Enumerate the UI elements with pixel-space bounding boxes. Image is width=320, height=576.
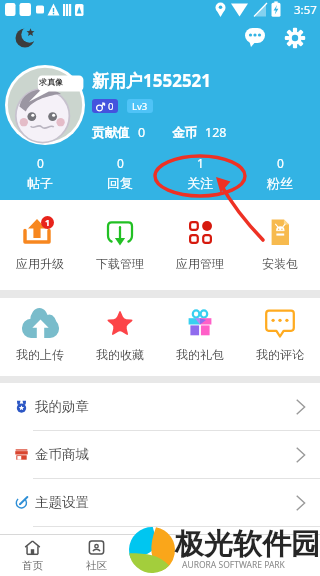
staticText: 求真像 bbox=[39, 77, 63, 87]
staticText: 关注 bbox=[187, 175, 213, 191]
staticText: 我的上传 bbox=[16, 347, 64, 362]
staticText: 0 bbox=[138, 124, 146, 141]
staticText: 首页 bbox=[22, 559, 43, 572]
staticText: 我的 bbox=[278, 559, 299, 572]
button[interactable]: 主题设置 bbox=[0, 479, 320, 526]
staticText: 金币 bbox=[172, 125, 197, 141]
button[interactable]: 我的评论 bbox=[240, 308, 320, 362]
button[interactable]: 0 bbox=[0, 155, 80, 191]
staticText: 回复 bbox=[107, 175, 133, 191]
staticText: AURORA SOFTWARE PARK bbox=[182, 559, 285, 571]
button[interactable]: 排行 bbox=[192, 535, 256, 576]
button[interactable]: Night mode bbox=[8, 20, 44, 56]
button[interactable]: 我的勋章 bbox=[0, 383, 320, 430]
button[interactable]: 1 bbox=[160, 155, 240, 191]
button[interactable]: Settings bbox=[278, 21, 312, 55]
staticText: 1 bbox=[45, 217, 50, 229]
staticText: Lv3 bbox=[132, 100, 148, 113]
staticText: 社区 bbox=[86, 559, 107, 572]
staticText: 应用管理 bbox=[176, 256, 224, 271]
staticText: 128 bbox=[205, 124, 227, 141]
staticText: 粉丝 bbox=[267, 175, 293, 191]
button[interactable]: Messages bbox=[238, 21, 272, 55]
staticText: 我的评论 bbox=[256, 347, 304, 362]
staticText: 排行 bbox=[214, 559, 235, 572]
staticText: 帖子 bbox=[27, 175, 53, 191]
button[interactable]: 首页 bbox=[0, 535, 64, 576]
button[interactable]: Avatar bbox=[5, 65, 85, 145]
staticText: 0 bbox=[117, 155, 124, 171]
staticText: 我的收藏 bbox=[96, 347, 144, 362]
staticText: 1 bbox=[197, 155, 204, 171]
staticText: 贡献值 bbox=[92, 125, 130, 141]
button[interactable]: 我的上传 bbox=[0, 308, 80, 362]
staticText: 应用升级 bbox=[16, 256, 64, 271]
button[interactable]: 安装包 bbox=[240, 217, 320, 271]
button[interactable]: 下载管理 bbox=[80, 217, 160, 271]
button[interactable]: 应用管理 bbox=[160, 217, 240, 271]
staticText: 新用户1552521 bbox=[92, 69, 212, 92]
button[interactable]: 0 bbox=[240, 155, 320, 191]
button[interactable]: 游戏 bbox=[128, 535, 192, 576]
staticText: 下载管理 bbox=[96, 256, 144, 271]
staticText: 游戏 bbox=[150, 559, 171, 572]
staticText: 我的勋章 bbox=[35, 398, 89, 415]
button[interactable]: 我的 bbox=[256, 535, 320, 576]
staticText: 3:57 bbox=[294, 2, 317, 18]
staticText: 安装包 bbox=[262, 256, 298, 271]
staticText: 金币商城 bbox=[35, 446, 89, 463]
button[interactable]: 我的礼包 bbox=[160, 308, 240, 362]
staticText: 极光软件园 bbox=[175, 526, 320, 563]
button[interactable]: 社区 bbox=[64, 535, 128, 576]
staticText: 主题设置 bbox=[35, 494, 89, 511]
button[interactable]: 我的收藏 bbox=[80, 308, 160, 362]
button[interactable]: 1 bbox=[0, 217, 80, 271]
button[interactable]: 金币商城 bbox=[0, 431, 320, 478]
staticText: 0 bbox=[108, 100, 114, 113]
staticText: 我的礼包 bbox=[176, 347, 224, 362]
staticText: 0 bbox=[277, 155, 284, 171]
staticText: 0 bbox=[37, 155, 44, 171]
button[interactable]: 0 bbox=[80, 155, 160, 191]
